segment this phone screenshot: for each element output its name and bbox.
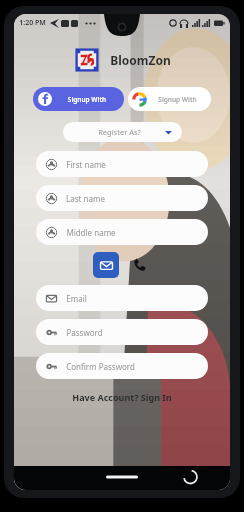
button[interactable]: BloomZon logo bbox=[74, 47, 100, 73]
button[interactable]: Password bbox=[36, 319, 208, 345]
button[interactable]: Signup With Facebook bbox=[33, 87, 124, 111]
staticText: Register As? bbox=[98, 127, 141, 137]
button[interactable]: Signup With Google bbox=[128, 87, 211, 111]
button[interactable]: First name bbox=[36, 151, 208, 177]
staticText: Confirm Password bbox=[66, 361, 135, 372]
staticText: Password bbox=[66, 327, 103, 338]
button[interactable]: Email bbox=[36, 285, 208, 311]
staticText: Signup With Google bbox=[150, 95, 205, 104]
staticText: Signup With Facebook bbox=[56, 95, 118, 104]
staticText: BloomZon bbox=[110, 52, 171, 68]
button[interactable]: Middle name bbox=[36, 219, 208, 245]
staticText: First name bbox=[66, 159, 106, 170]
button[interactable]: Confirm Password bbox=[36, 353, 208, 379]
button[interactable]: Register As? bbox=[63, 122, 182, 142]
staticText: Last name bbox=[66, 193, 105, 204]
button[interactable]: Last name bbox=[36, 185, 208, 211]
button[interactable]: Sign up with phone bbox=[129, 254, 151, 276]
staticText: Email bbox=[66, 293, 87, 304]
button[interactable]: Have Account? Sign In bbox=[66, 389, 178, 405]
button[interactable]: Sign up with email bbox=[93, 252, 119, 278]
staticText: 1:20 PM bbox=[19, 18, 46, 28]
staticText: Middle name bbox=[66, 227, 116, 238]
